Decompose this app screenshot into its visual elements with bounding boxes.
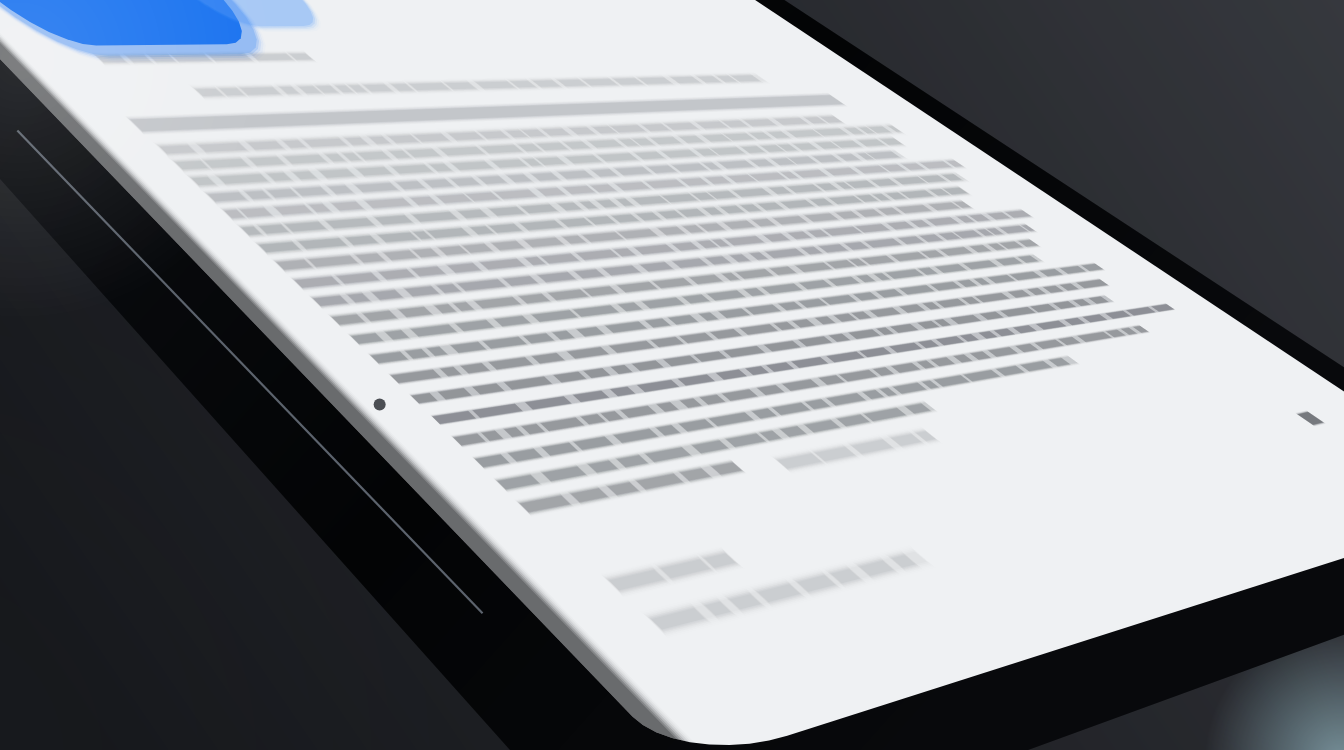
button[interactable]: Article reader	[0, 0, 1344, 750]
